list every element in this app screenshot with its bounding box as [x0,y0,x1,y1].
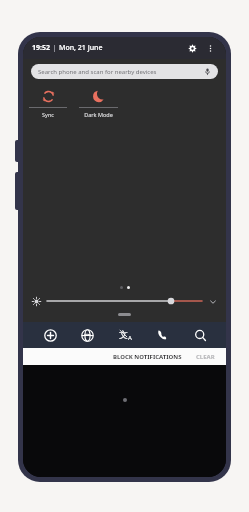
button[interactable]: Dark Mode [73,88,124,118]
button[interactable]: Expand [207,296,218,307]
staticText: BLOCK NOTIFICATIONS [113,353,182,361]
button[interactable]: BLOCK NOTIFICATIONS [110,351,185,363]
staticText: Mon, 21 June [59,43,103,53]
button[interactable]: Search [189,324,211,346]
button[interactable]: More options [203,41,217,55]
button[interactable]: Translate [114,324,136,346]
button[interactable]: Sync [23,88,73,118]
button[interactable]: Search phone and scan for nearby devices [31,64,218,79]
button[interactable]: Browser [76,324,98,346]
staticText: 文 [119,329,128,340]
button[interactable]: CLEAR [193,351,218,363]
staticText: Search phone and scan for nearby devices [38,68,157,76]
staticText: Sync [42,111,54,118]
button[interactable]: Settings [184,40,200,56]
button[interactable] [47,295,202,307]
staticText: 19:52 [32,43,50,53]
staticText: A [128,334,132,342]
staticText: CLEAR [196,353,215,361]
staticText: Dark Mode [84,111,113,118]
button[interactable]: Add [39,324,61,346]
button[interactable]: Phone [151,324,173,346]
other: Brightness [31,296,42,307]
